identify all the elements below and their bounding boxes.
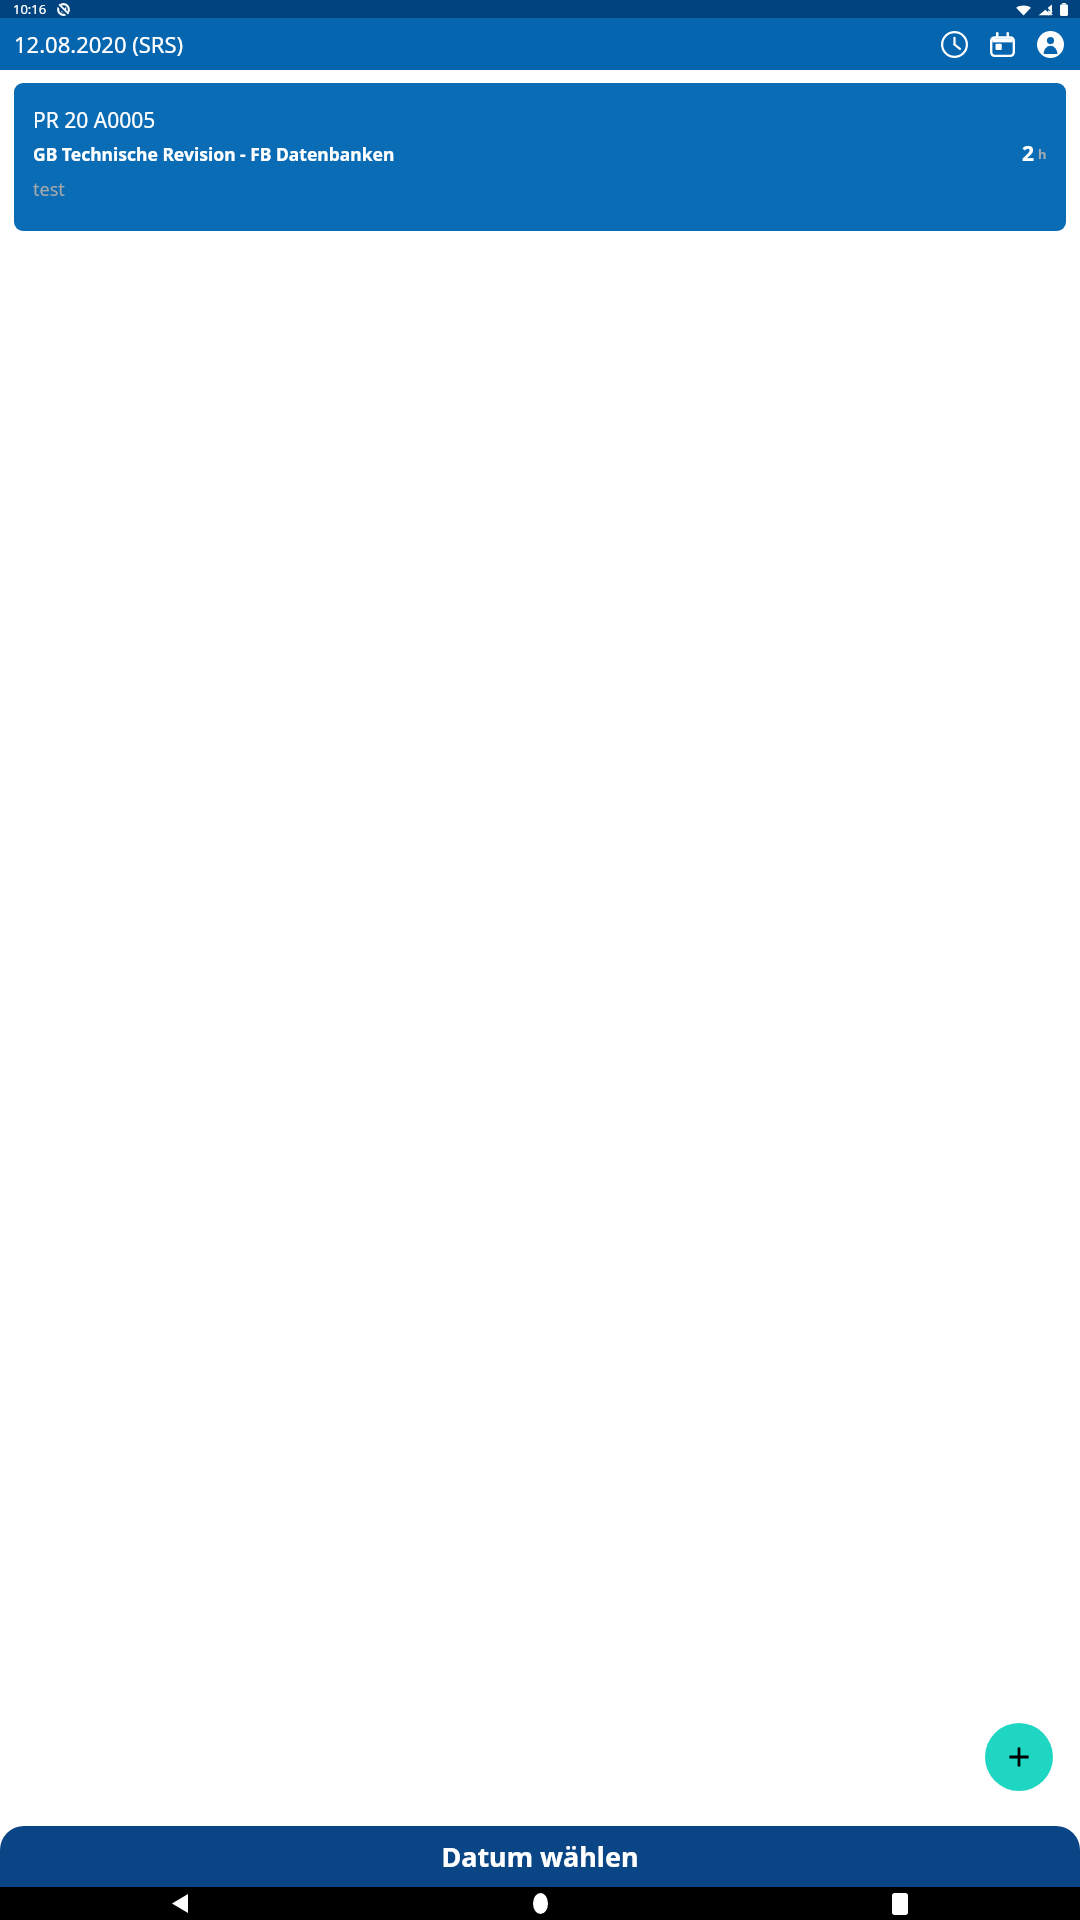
staticText: 2 <box>1022 139 1035 168</box>
staticText: 12.08.2020 (SRS) <box>14 29 184 59</box>
button[interactable]: Back <box>0 1887 360 1920</box>
staticText: PR 20 A0005 <box>33 106 156 135</box>
button[interactable]: PR 20 A0005 <box>14 83 1066 231</box>
button[interactable]: Add entry <box>985 1723 1053 1791</box>
button[interactable]: Recent apps <box>720 1887 1080 1920</box>
button[interactable]: Calendar <box>978 20 1026 68</box>
staticText: test <box>33 177 65 202</box>
staticText: GB Technische Revision - FB Datenbanken <box>33 142 1022 166</box>
staticText: Datum wählen <box>441 1838 639 1875</box>
button[interactable]: Home <box>360 1887 720 1920</box>
button[interactable]: Account <box>1026 20 1074 68</box>
staticText: h <box>1038 145 1047 163</box>
button[interactable]: Time entries <box>930 20 978 68</box>
button[interactable]: Datum wählen <box>0 1826 1080 1887</box>
staticText: 10:16 <box>13 0 47 18</box>
